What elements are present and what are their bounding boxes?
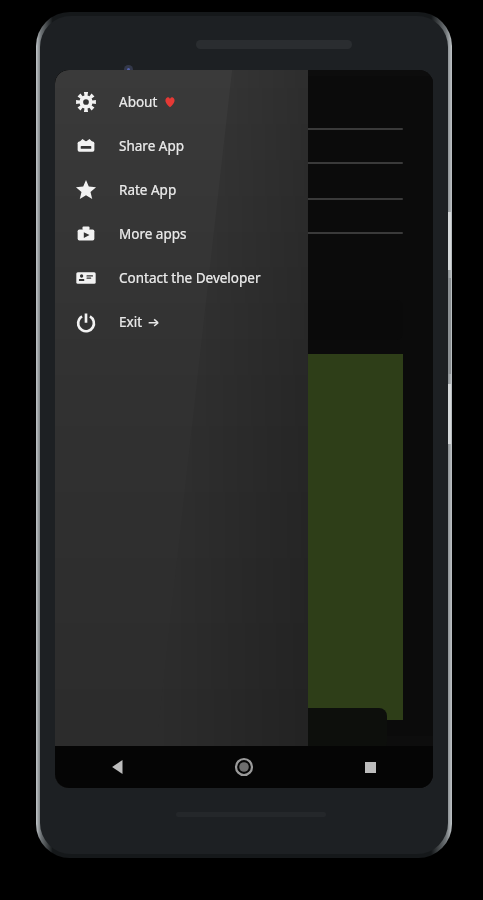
button[interactable]: Back — [98, 747, 138, 787]
staticText: More apps — [119, 225, 187, 243]
button[interactable]: About — [55, 80, 308, 124]
staticText: Contact the Developer — [119, 269, 261, 287]
staticText: Share App — [119, 137, 184, 155]
button[interactable]: COPY CODE — [73, 300, 403, 340]
button[interactable]: SHARE COLOR CODE — [91, 708, 387, 750]
button[interactable]: Home — [224, 747, 264, 787]
staticText: Exit — [119, 313, 143, 331]
button[interactable]: More apps — [55, 212, 308, 256]
staticText: Rate App — [119, 181, 177, 199]
other: Share App — [75, 135, 97, 157]
other: Exit — [75, 311, 97, 333]
other: About — [75, 91, 97, 113]
button[interactable]: Exit — [55, 300, 308, 344]
button[interactable]: Recent apps — [350, 747, 390, 787]
button[interactable]: Share App — [55, 124, 308, 168]
other: Rate App — [75, 179, 97, 201]
other: More apps — [75, 223, 97, 245]
button[interactable]: Rate App — [55, 168, 308, 212]
staticText: About — [119, 93, 158, 111]
button[interactable]: Contact the Developer — [55, 256, 308, 300]
other: Contact the Developer — [75, 267, 97, 289]
